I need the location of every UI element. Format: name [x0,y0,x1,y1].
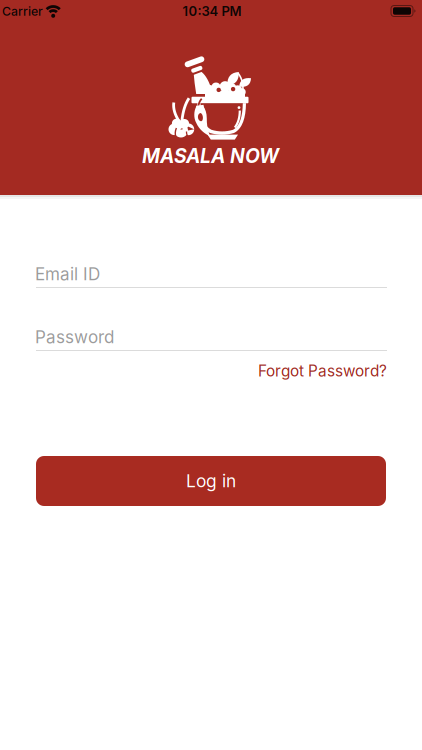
staticText: Log in [186,470,236,491]
staticText: 10:34 PM [182,3,241,19]
staticText: Carrier [2,4,43,19]
staticText: Email ID [35,264,100,284]
staticText: Password [35,327,114,347]
staticText: MASALA NOW [142,144,279,168]
staticText: Forgot Password? [258,362,387,380]
